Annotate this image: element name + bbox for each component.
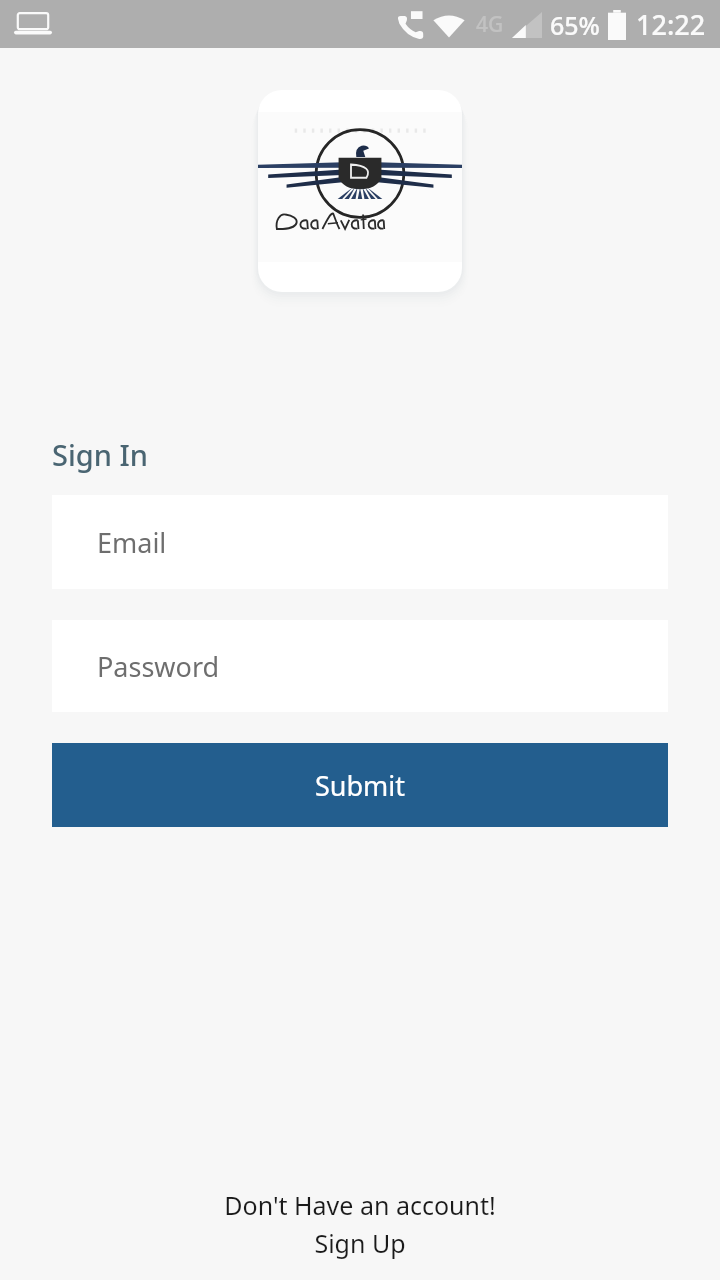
button[interactable]: Sign In [52, 435, 148, 474]
button[interactable]: Password [52, 620, 668, 712]
staticText: 4G [476, 10, 504, 39]
staticText: Don't Have an account! [224, 1188, 496, 1222]
staticText: Sign Up [314, 1226, 406, 1260]
button[interactable] [258, 90, 462, 292]
button[interactable]: Submit [52, 743, 668, 827]
staticText: 12:22 [636, 6, 706, 43]
staticText: Email [97, 524, 167, 561]
button[interactable]: Email [52, 495, 668, 589]
staticText: Password [97, 648, 220, 685]
other: Cast [14, 11, 52, 37]
staticText: Sign In [52, 435, 148, 474]
button[interactable]: Don't Have an account! [0, 1188, 720, 1260]
staticText: Submit [315, 767, 406, 804]
staticText: 65% [550, 8, 600, 42]
